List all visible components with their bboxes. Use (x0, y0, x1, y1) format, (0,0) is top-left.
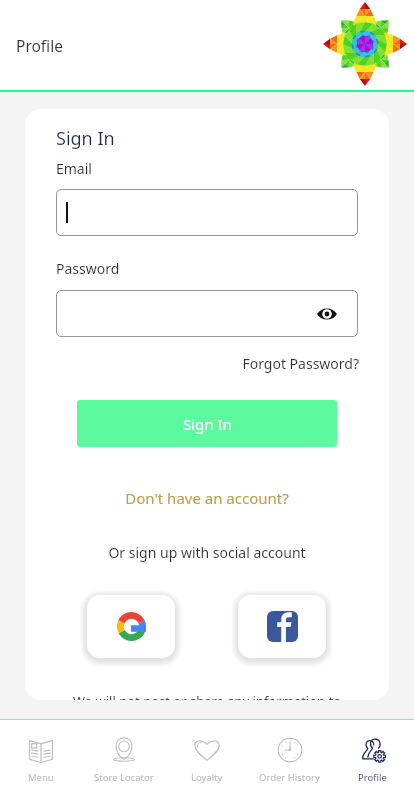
staticText: Store Locator (94, 771, 154, 784)
staticText: Password (56, 259, 120, 278)
button[interactable] (56, 189, 358, 236)
staticText: Profile (16, 35, 63, 56)
staticText: Email (56, 159, 92, 178)
staticText: Loyalty (191, 771, 223, 784)
button[interactable]: Show password (56, 290, 358, 337)
button[interactable]: Sign in with Google (87, 595, 175, 658)
button[interactable]: Loyalty (165, 720, 248, 800)
button[interactable]: Sign in with Facebook (238, 595, 326, 658)
staticText: Order History (259, 771, 320, 784)
staticText: We will not post or share any informatio… (25, 692, 389, 700)
button[interactable]: Don't have an account? (25, 488, 389, 508)
button[interactable]: Forgot Password? (56, 354, 359, 373)
staticText: Sign In (56, 126, 115, 151)
staticText: Profile (358, 771, 387, 784)
button[interactable]: Sign In (77, 400, 337, 447)
staticText: Menu (28, 771, 54, 784)
staticText: Sign In (183, 414, 232, 434)
button[interactable]: Menu (0, 720, 82, 800)
button[interactable]: Profile (331, 720, 414, 800)
button[interactable]: Order History (248, 720, 331, 800)
button[interactable]: Store Locator (82, 720, 165, 800)
staticText: Or sign up with social account (25, 543, 389, 562)
other: Show password (317, 308, 337, 320)
